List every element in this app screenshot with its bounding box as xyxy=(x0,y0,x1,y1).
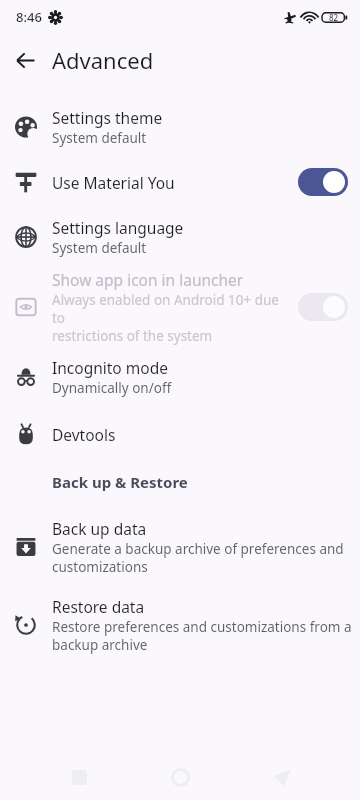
button[interactable]: Back up data xyxy=(0,508,360,586)
staticText: Always enabled on Android 10+ due to res… xyxy=(52,291,290,345)
staticText: Generate a backup archive of preferences… xyxy=(52,540,344,576)
button: Show app icon in launcher xyxy=(0,266,360,348)
button[interactable]: Settings language xyxy=(0,208,360,266)
staticText: Use Material You xyxy=(52,172,175,193)
staticText: 8:46 xyxy=(16,8,42,26)
button[interactable]: Restore data xyxy=(0,586,360,664)
button[interactable]: Use Material You xyxy=(0,156,360,208)
staticText: System default xyxy=(52,239,147,257)
staticText: Incognito mode xyxy=(52,357,168,378)
button[interactable]: Back xyxy=(5,40,45,80)
button[interactable]: Devtools xyxy=(0,406,360,462)
staticText: System default xyxy=(52,129,147,147)
staticText: 82 xyxy=(329,12,339,23)
button[interactable]: Use Material You toggle xyxy=(298,168,348,196)
staticText: Restore preferences and customizations f… xyxy=(52,618,352,654)
staticText: Back up & Restore xyxy=(52,472,188,492)
staticText: Advanced xyxy=(52,45,154,75)
staticText: Settings theme xyxy=(52,107,163,128)
staticText: Show app icon in launcher xyxy=(52,269,244,290)
button[interactable]: Incognito mode xyxy=(0,348,360,406)
staticText: Restore data xyxy=(52,596,145,617)
button[interactable]: Settings theme xyxy=(0,98,360,156)
staticText: Devtools xyxy=(52,424,116,445)
staticText: Back up data xyxy=(52,518,147,539)
staticText: Dynamically on/off xyxy=(52,379,172,397)
button[interactable]: Recent apps xyxy=(56,754,102,800)
staticText: Settings language xyxy=(52,217,184,238)
